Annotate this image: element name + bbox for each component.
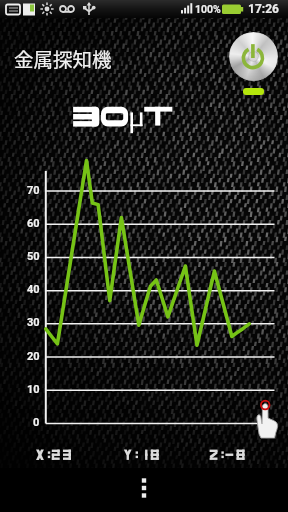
staticText: 70	[27, 184, 40, 197]
staticText: 60	[27, 217, 40, 230]
staticText: 30	[27, 316, 40, 329]
staticText: 40	[27, 283, 40, 296]
staticText: 17:26	[248, 2, 279, 16]
staticText: 0	[33, 416, 40, 429]
staticText: 金属探知機	[14, 44, 112, 72]
staticText: 20	[27, 350, 40, 363]
staticText: 100%	[195, 3, 221, 15]
button[interactable]: More options	[122, 468, 166, 512]
staticText: 50	[27, 250, 40, 263]
button[interactable]: Power	[229, 32, 278, 81]
staticText: 10	[27, 383, 40, 396]
